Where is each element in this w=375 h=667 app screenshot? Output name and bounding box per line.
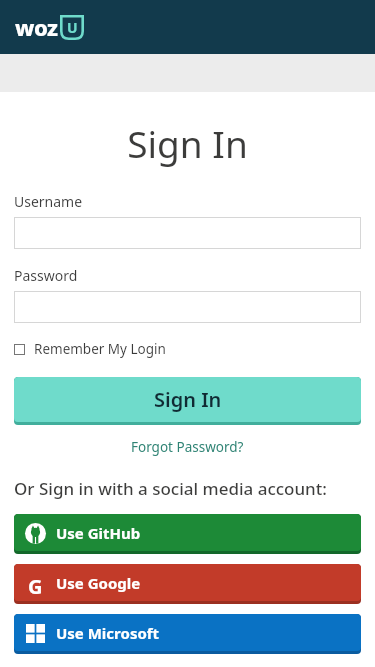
- button[interactable]: Use GitHub: [14, 514, 361, 554]
- staticText: Use Microsoft: [56, 623, 160, 643]
- staticText: Remember My Login: [34, 340, 166, 358]
- staticText: Sign In: [154, 386, 222, 413]
- staticText: Password: [14, 266, 78, 285]
- staticText: woz: [15, 12, 58, 42]
- staticText: Use Google: [56, 573, 141, 593]
- staticText: Sign In: [0, 118, 375, 168]
- button[interactable]: Woz U home: [15, 12, 84, 42]
- staticText: G: [28, 573, 43, 594]
- staticText: Use GitHub: [56, 523, 141, 543]
- button[interactable]: Sign In: [14, 377, 361, 425]
- staticText: Or Sign in with a social media account:: [14, 477, 327, 500]
- staticText: Forgot Password?: [131, 438, 244, 456]
- staticText: U: [67, 18, 78, 37]
- button[interactable]: Forgot Password?: [0, 438, 375, 456]
- button[interactable]: Text input: [14, 217, 361, 249]
- staticText: Username: [14, 192, 83, 211]
- button[interactable]: Use Microsoft: [14, 614, 361, 654]
- button[interactable]: Remember My Login: [14, 340, 166, 358]
- button[interactable]: G: [14, 564, 361, 604]
- button[interactable]: Text input: [14, 291, 361, 323]
